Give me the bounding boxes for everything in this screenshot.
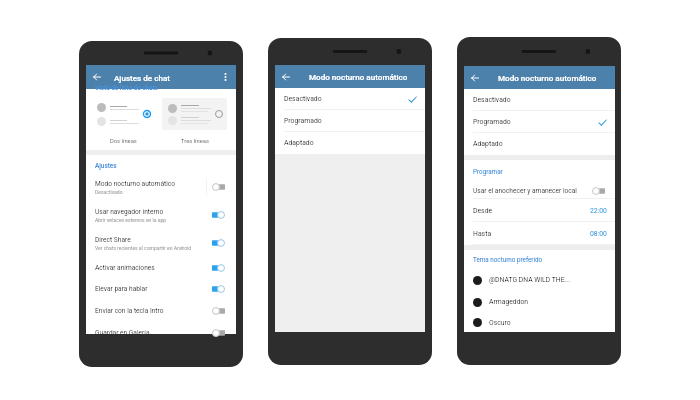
button[interactable]: On [212,285,225,293]
staticText: Adaptado [284,139,417,147]
staticText: Activar animaciones [95,264,155,272]
staticText: @DNATG DNA WILD THE... [489,276,570,284]
button[interactable]: Usar navegador interno [86,202,236,228]
button[interactable]: Armageddon [464,291,615,313]
button[interactable]: Off [592,187,605,195]
button[interactable]: Off [212,329,225,337]
button[interactable]: On [212,211,225,219]
button[interactable]: Desde [464,199,615,222]
button[interactable]: Back [278,69,294,85]
button[interactable]: Elevar para hablar [86,278,236,300]
staticText: Ajustes de chat [114,73,170,82]
staticText: Abrir enlaces externos en la app [95,217,167,223]
staticText: Guardar en Galería [95,329,150,337]
button[interactable]: Activar animaciones [86,257,236,279]
button[interactable]: Usar el anochecer y amanecer local [464,183,615,199]
button[interactable]: Programado [275,110,425,132]
staticText: Desactivado [284,95,408,103]
button[interactable]: On [212,239,225,247]
button[interactable]: Off [212,307,225,315]
button[interactable]: Oscuro [464,313,615,332]
staticText: Usar el anochecer y amanecer local [473,187,592,195]
staticText: Direct Share [95,236,131,244]
staticText: Modo nocturno automático [309,72,408,81]
staticText: Desactivado [95,189,123,195]
button[interactable] [162,98,227,130]
staticText: Hasta [473,230,590,238]
staticText: Programado [284,117,417,125]
staticText: 08:00 [590,230,607,238]
button[interactable]: Back [89,69,105,85]
button[interactable]: Desactivado [275,88,425,110]
button[interactable]: Adaptado [275,132,425,154]
button[interactable]: Adaptado [464,133,615,155]
button[interactable]: Guardar en Galería [86,322,236,344]
button[interactable]: Back [467,70,483,86]
staticText: Elevar para hablar [95,285,148,293]
staticText: Usar navegador interno [95,208,164,216]
staticText: Modo nocturno automático [95,180,175,188]
button[interactable]: Desactivado [464,89,615,111]
button[interactable]: More options [218,70,232,84]
staticText: Dos líneas [110,138,137,145]
button[interactable]: Direct Share [86,230,236,256]
button[interactable]: Off [212,183,225,191]
button[interactable]: Modo nocturno automático [86,174,236,200]
staticText: Adaptado [473,140,607,148]
staticText: 22:00 [590,207,607,215]
button[interactable]: On [212,264,225,272]
staticText: Programar [473,168,503,175]
button[interactable]: Hasta [464,222,615,245]
staticText: Ver chats recientes al compartir en Andr… [95,245,192,251]
staticText: Vista de lista de chats [95,84,158,90]
staticText: Programado [473,118,598,126]
staticText: Desde [473,207,590,215]
staticText: Desactivado [473,96,607,104]
button[interactable]: @DNATG DNA WILD THE... [464,269,615,291]
staticText: Enviar con la tecla Intro [95,307,164,315]
staticText: Oscuro [489,319,511,327]
button[interactable] [91,98,155,130]
staticText: Tres líneas [181,138,209,145]
button[interactable]: Enviar con la tecla Intro [86,300,236,322]
staticText: Armageddon [489,298,529,306]
staticText: Tema nocturno preferido [473,256,543,263]
staticText: Modo nocturno automático [498,73,597,82]
button[interactable]: Programado [464,111,615,133]
staticText: Ajustes [95,162,117,170]
